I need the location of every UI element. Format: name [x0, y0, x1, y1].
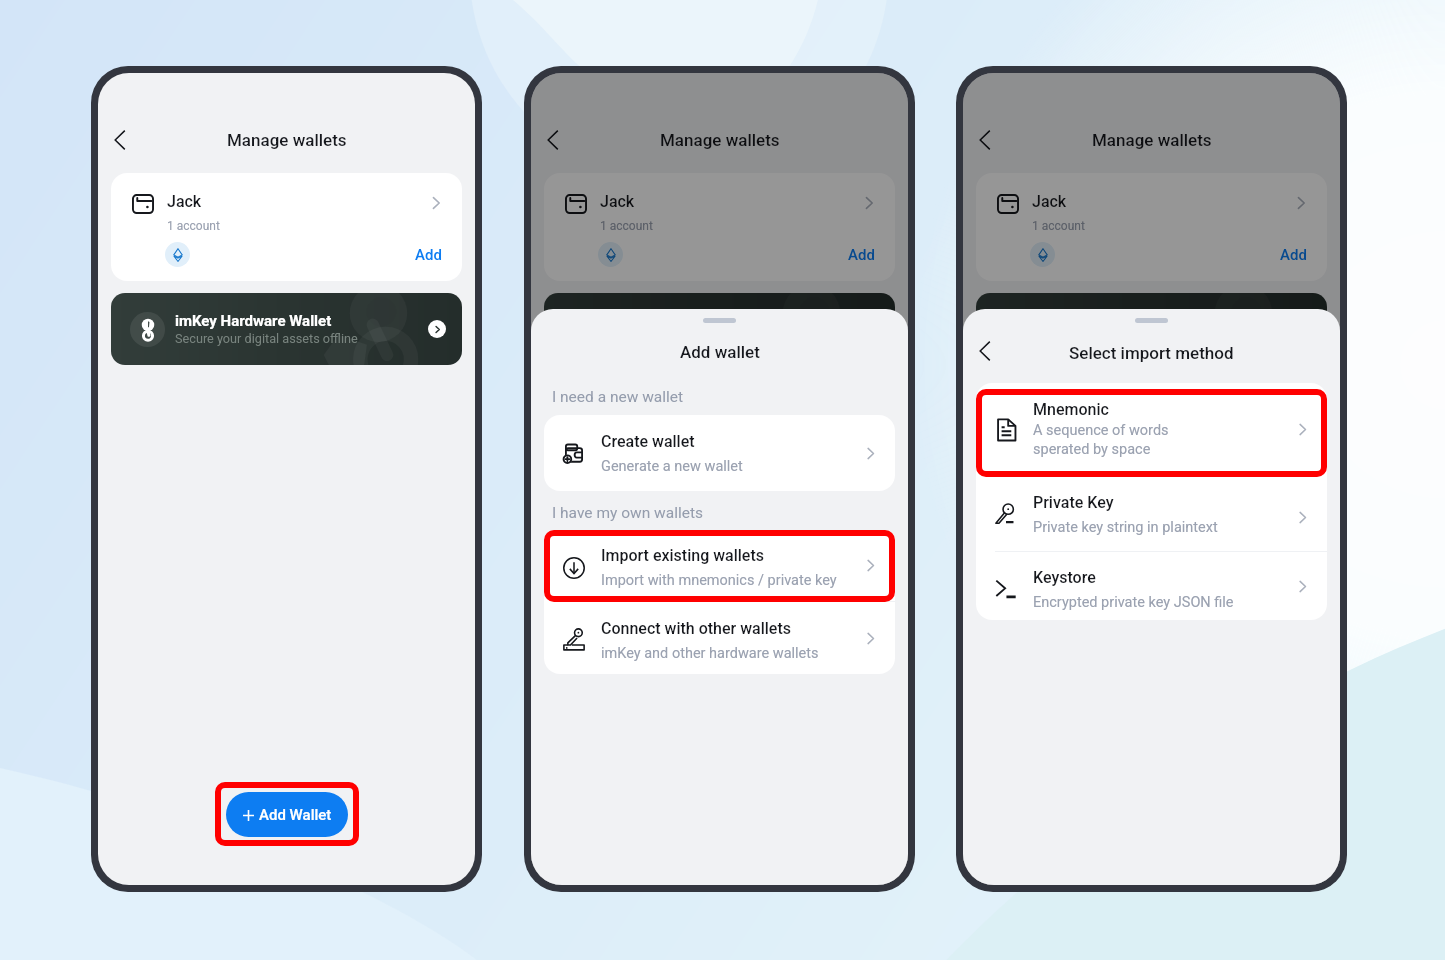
staticText: Select import method — [1069, 343, 1234, 363]
button[interactable]: Import existing wallets — [544, 530, 895, 601]
button[interactable]: Jack — [544, 173, 895, 281]
button[interactable]: Add Wallet — [226, 792, 348, 837]
button[interactable]: Jack — [111, 173, 462, 281]
button[interactable]: Add — [413, 243, 444, 267]
staticText: Jack — [167, 192, 202, 211]
staticText: Generate a new wallet — [601, 458, 743, 475]
staticText: Add — [1280, 246, 1307, 264]
button[interactable]: Back — [533, 120, 573, 160]
staticText: Add Wallet — [259, 806, 332, 824]
staticText: A sequence of words sperated by space — [1033, 422, 1191, 458]
staticText: imKey and other hardware wallets — [601, 645, 819, 662]
button[interactable]: Create wallet — [544, 415, 895, 491]
staticText: Import existing wallets — [601, 546, 764, 565]
button[interactable]: Mnemonic — [976, 383, 1327, 483]
staticText: 1 account — [600, 219, 653, 233]
staticText: 1 account — [167, 219, 220, 233]
button[interactable]: imKey Hardware Wallet — [544, 293, 895, 365]
button[interactable]: Connect with other wallets — [544, 602, 895, 674]
button[interactable]: Add — [1278, 243, 1309, 267]
staticText: imKey Hardware Wallet — [1040, 312, 1197, 330]
staticText: I need a new wallet — [552, 388, 684, 406]
staticText: Private key string in plaintext — [1033, 519, 1218, 536]
staticText: imKey Hardware Wallet — [608, 312, 765, 330]
button[interactable]: imKey Hardware Wallet — [976, 293, 1327, 365]
button[interactable]: Back — [967, 333, 1003, 369]
staticText: Import with mnemonics / private key — [601, 572, 837, 589]
staticText: Add wallet — [680, 342, 760, 362]
staticText: Jack — [1032, 192, 1067, 211]
staticText: Connect with other wallets — [601, 619, 791, 638]
staticText: Add — [848, 246, 875, 264]
button[interactable]: imKey Hardware Wallet — [111, 293, 462, 365]
staticText: 1 account — [1032, 219, 1085, 233]
staticText: Mnemonic — [1033, 400, 1109, 419]
staticText: Jack — [600, 192, 635, 211]
staticText: Keystore — [1033, 568, 1096, 587]
staticText: Manage wallets — [660, 130, 780, 150]
button[interactable]: Private Key — [976, 483, 1327, 551]
button[interactable]: Back — [965, 120, 1005, 160]
staticText: Create wallet — [601, 432, 695, 451]
button[interactable]: Jack — [976, 173, 1327, 281]
staticText: Private Key — [1033, 493, 1114, 512]
button[interactable]: Open imKey — [428, 320, 446, 338]
staticText: Manage wallets — [1092, 130, 1212, 150]
staticText: imKey Hardware Wallet — [175, 312, 332, 330]
staticText: I have my own wallets — [552, 504, 703, 522]
button[interactable]: Add — [846, 243, 877, 267]
button[interactable]: Keystore — [976, 552, 1327, 620]
button[interactable]: Back — [100, 120, 140, 160]
staticText: Encrypted private key JSON file — [1033, 594, 1234, 611]
staticText: Secure your digital assets offline — [175, 331, 358, 346]
staticText: Manage wallets — [227, 130, 347, 150]
staticText: Add — [415, 246, 442, 264]
